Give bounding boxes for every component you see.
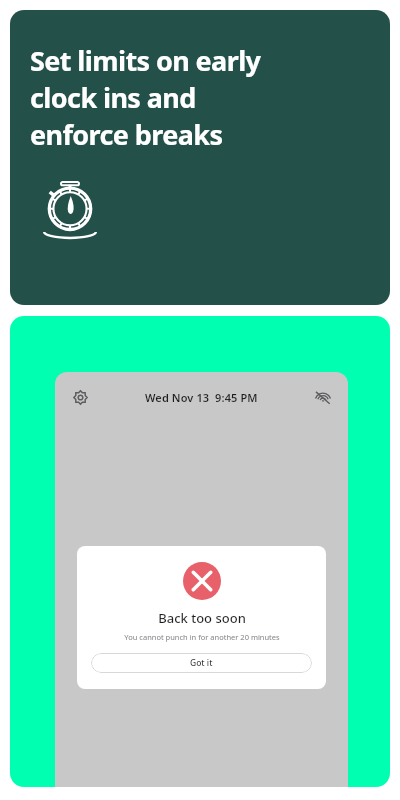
staticText: You cannot punch in for another 20 minut… (124, 632, 280, 642)
button[interactable]: Settings (69, 386, 91, 408)
staticText: Wed Nov 13 9:45 PM (145, 390, 258, 405)
button[interactable]: No network connection (312, 386, 334, 408)
staticText: Got it (190, 657, 213, 669)
button[interactable]: Got it (91, 653, 312, 673)
staticText: enforce breaks (30, 116, 223, 153)
staticText: Set limits on early (30, 42, 261, 79)
staticText: clock ins and (30, 79, 196, 116)
staticText: Back too soon (158, 609, 246, 627)
